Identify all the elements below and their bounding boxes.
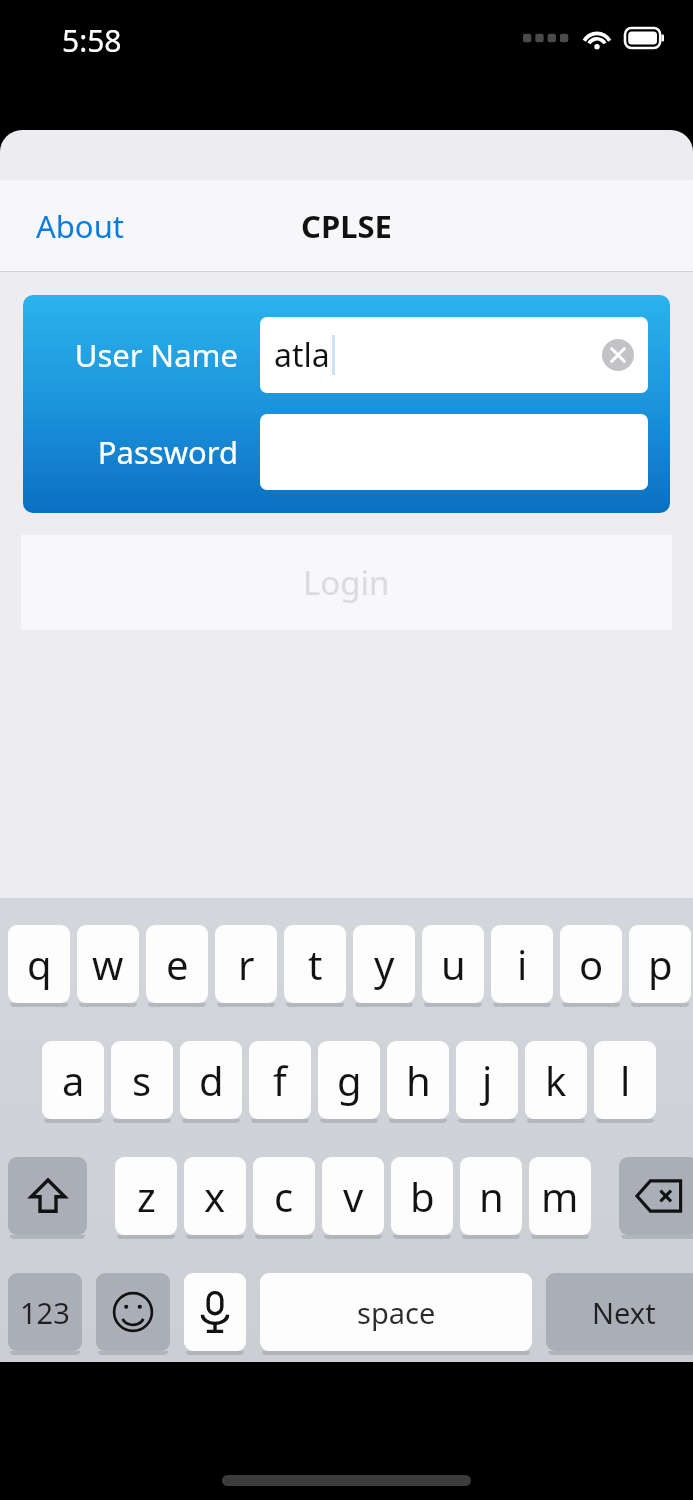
staticText: e	[166, 937, 189, 991]
staticText: g	[337, 1053, 362, 1107]
staticText: i	[517, 937, 528, 991]
button[interactable]: r	[215, 925, 277, 1003]
staticText: w	[92, 937, 124, 991]
button[interactable]: p	[629, 925, 691, 1003]
button[interactable]: c	[253, 1157, 315, 1235]
button[interactable]: g	[318, 1041, 380, 1119]
button[interactable]: Dictation	[184, 1273, 246, 1351]
button[interactable]: i	[491, 925, 553, 1003]
staticText: o	[579, 937, 604, 991]
staticText: CPLSE	[301, 205, 392, 247]
staticText: u	[441, 937, 466, 991]
button[interactable]: w	[77, 925, 139, 1003]
button[interactable]: l	[594, 1041, 656, 1119]
staticText: d	[199, 1053, 224, 1107]
staticText: m	[541, 1169, 579, 1223]
button[interactable]: f	[249, 1041, 311, 1119]
staticText: f	[273, 1053, 287, 1107]
button[interactable]: s	[111, 1041, 173, 1119]
button[interactable]: h	[387, 1041, 449, 1119]
button[interactable]: d	[180, 1041, 242, 1119]
staticText: l	[620, 1053, 631, 1107]
button[interactable]: Clear text	[602, 339, 634, 371]
button[interactable]: atla	[260, 317, 648, 393]
staticText: j	[482, 1053, 493, 1107]
button[interactable]: z	[115, 1157, 177, 1235]
button[interactable]: v	[322, 1157, 384, 1235]
staticText: b	[410, 1169, 435, 1223]
button[interactable]: j	[456, 1041, 518, 1119]
staticText: space	[357, 1293, 436, 1332]
staticText: k	[545, 1053, 567, 1107]
button[interactable]: Emoji	[96, 1273, 170, 1351]
staticText: y	[374, 937, 395, 991]
staticText: p	[648, 937, 673, 991]
staticText: Login	[303, 560, 390, 605]
staticText: Password	[97, 431, 238, 473]
staticText: n	[479, 1169, 504, 1223]
staticText: Next	[592, 1293, 656, 1332]
staticText: r	[238, 937, 255, 991]
staticText: a	[62, 1053, 85, 1107]
staticText: v	[343, 1169, 364, 1223]
button[interactable]	[260, 414, 648, 490]
staticText: User Name	[74, 334, 238, 376]
button[interactable]: 123	[8, 1273, 82, 1351]
button[interactable]: Next	[546, 1273, 693, 1351]
staticText: 5:58	[62, 20, 122, 61]
staticText: t	[308, 937, 323, 991]
staticText: About	[36, 205, 124, 247]
button[interactable]: e	[146, 925, 208, 1003]
button[interactable]: u	[422, 925, 484, 1003]
staticText: h	[406, 1053, 431, 1107]
button[interactable]: n	[460, 1157, 522, 1235]
button[interactable]: o	[560, 925, 622, 1003]
button[interactable]: k	[525, 1041, 587, 1119]
staticText: x	[204, 1169, 226, 1223]
button[interactable]: Backspace	[619, 1157, 693, 1235]
staticText: s	[132, 1053, 152, 1107]
button[interactable]: t	[284, 925, 346, 1003]
button[interactable]: space	[260, 1273, 532, 1351]
button[interactable]: a	[42, 1041, 104, 1119]
staticText: 123	[20, 1293, 70, 1332]
button[interactable]: x	[184, 1157, 246, 1235]
button[interactable]: Shift	[8, 1157, 87, 1235]
button[interactable]: y	[353, 925, 415, 1003]
button[interactable]: About	[18, 197, 142, 255]
staticText: atla	[274, 333, 330, 377]
staticText: c	[274, 1169, 294, 1223]
button[interactable]: m	[529, 1157, 591, 1235]
button[interactable]: q	[8, 925, 70, 1003]
staticText: q	[27, 937, 52, 991]
button[interactable]: b	[391, 1157, 453, 1235]
staticText: z	[137, 1169, 156, 1223]
